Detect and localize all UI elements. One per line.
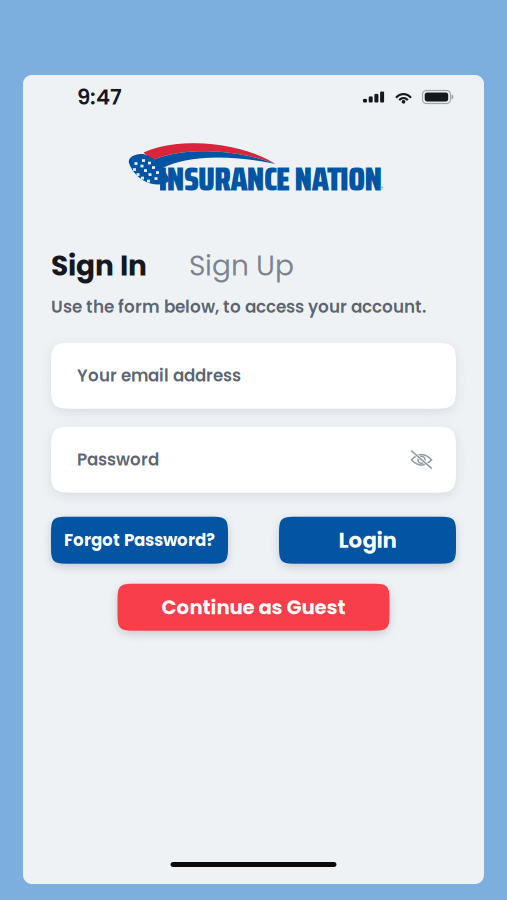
button[interactable]: Password — [51, 427, 456, 493]
staticText: Your email address — [77, 364, 241, 387]
button[interactable]: Forgot Password? — [51, 517, 228, 564]
staticText: Continue as Guest — [161, 593, 345, 621]
staticText: ® — [379, 183, 383, 195]
button[interactable]: Sign Up — [147, 246, 294, 285]
staticText: Forgot Password? — [64, 529, 215, 552]
staticText: Sign In — [51, 246, 147, 285]
button[interactable]: Login — [279, 517, 456, 564]
button[interactable]: Sign In — [51, 246, 147, 285]
staticText: INSURANCE NATION — [158, 153, 382, 205]
staticText: Use the form below, to access your accou… — [51, 295, 426, 319]
staticText: Sign Up — [189, 246, 294, 285]
button[interactable]: Your email address — [51, 343, 456, 409]
staticText: 9:47 — [77, 82, 122, 112]
staticText: Password — [77, 448, 159, 471]
button[interactable]: Continue as Guest — [117, 584, 389, 631]
staticText: Login — [338, 525, 396, 555]
